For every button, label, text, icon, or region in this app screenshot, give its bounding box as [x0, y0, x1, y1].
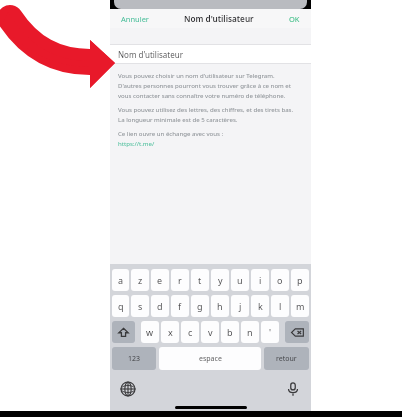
staticText: o [277, 274, 283, 286]
staticText: 123 [128, 354, 141, 364]
button[interactable]: l [271, 295, 289, 317]
button[interactable]: d [151, 295, 169, 317]
button[interactable]: Annuler [119, 12, 151, 26]
button[interactable]: f [171, 295, 189, 317]
button[interactable]: z [131, 269, 149, 291]
button[interactable]: s [131, 295, 149, 317]
button[interactable]: y [211, 269, 229, 291]
button[interactable]: c [181, 321, 199, 343]
button[interactable]: k [251, 295, 269, 317]
staticText: https://t.me/ [118, 139, 155, 147]
button[interactable]: i [251, 269, 269, 291]
staticText: espace [199, 354, 222, 364]
button[interactable]: w [141, 321, 159, 343]
staticText: j [239, 300, 242, 312]
staticText: w [146, 326, 154, 338]
button[interactable]: OK [287, 12, 302, 26]
button[interactable]: a [112, 269, 129, 291]
button[interactable]: j [231, 295, 249, 317]
button[interactable]: t [191, 269, 209, 291]
staticText: OK [289, 14, 300, 24]
button[interactable]: b [221, 321, 239, 343]
button[interactable]: n [241, 321, 259, 343]
button[interactable]: https://t.me/ [118, 139, 155, 147]
staticText: p [297, 274, 303, 286]
staticText: q [118, 300, 124, 312]
staticText: Annuler [121, 14, 149, 24]
button[interactable]: h [211, 295, 229, 317]
staticText: h [217, 300, 223, 312]
staticText: d [157, 300, 163, 312]
button[interactable]: q [112, 295, 129, 317]
staticText: a [118, 274, 124, 286]
button[interactable]: o [271, 269, 289, 291]
staticText: r [178, 274, 182, 286]
staticText: l [279, 300, 282, 312]
button[interactable]: g [191, 295, 209, 317]
button[interactable]: 123 [112, 347, 156, 370]
button[interactable]: espace [159, 347, 261, 370]
staticText: m [296, 300, 305, 312]
staticText: Nom d'utilisateur [184, 13, 254, 24]
staticText: Vous pouvez choisir un nom d'utilisateur… [118, 71, 275, 79]
staticText: g [197, 300, 203, 312]
button[interactable]: u [231, 269, 249, 291]
button[interactable]: Shift [112, 321, 135, 343]
staticText: z [138, 274, 143, 286]
staticText: x [168, 326, 173, 338]
button[interactable]: m [291, 295, 309, 317]
staticText: c [188, 326, 193, 338]
staticText: D'autres personnes pourront vous trouver… [118, 81, 291, 89]
staticText: Vous pouvez utilisez des lettres, des ch… [118, 105, 294, 113]
staticText: b [227, 326, 233, 338]
staticText: La longueur minimale est de 5 caractères… [118, 115, 238, 123]
button[interactable]: Change keyboard language [120, 381, 136, 397]
button[interactable]: x [161, 321, 179, 343]
staticText: y [218, 274, 223, 286]
button[interactable]: retour [264, 347, 309, 370]
staticText: retour [276, 354, 297, 364]
button[interactable]: r [171, 269, 189, 291]
button[interactable]: p [291, 269, 309, 291]
button[interactable]: ' [261, 321, 279, 343]
staticText: Ce lien ouvre un échange avec vous : [118, 129, 224, 137]
staticText: f [178, 300, 182, 312]
button[interactable]: Dictation [285, 381, 301, 397]
staticText: u [237, 274, 243, 286]
staticText: Nom d'utilisateur [118, 49, 183, 60]
staticText: i [259, 274, 262, 286]
staticText: n [247, 326, 253, 338]
button[interactable]: v [201, 321, 219, 343]
staticText: t [198, 274, 202, 286]
staticText: vous contacter sans connaître votre numé… [118, 91, 286, 99]
staticText: v [208, 326, 213, 338]
staticText: e [157, 274, 163, 286]
button[interactable]: Nom d'utilisateur [110, 45, 311, 63]
staticText: s [138, 300, 143, 312]
button[interactable]: e [151, 269, 169, 291]
staticText: k [258, 300, 263, 312]
button[interactable]: Backspace [285, 321, 309, 343]
staticText: ' [269, 326, 272, 338]
